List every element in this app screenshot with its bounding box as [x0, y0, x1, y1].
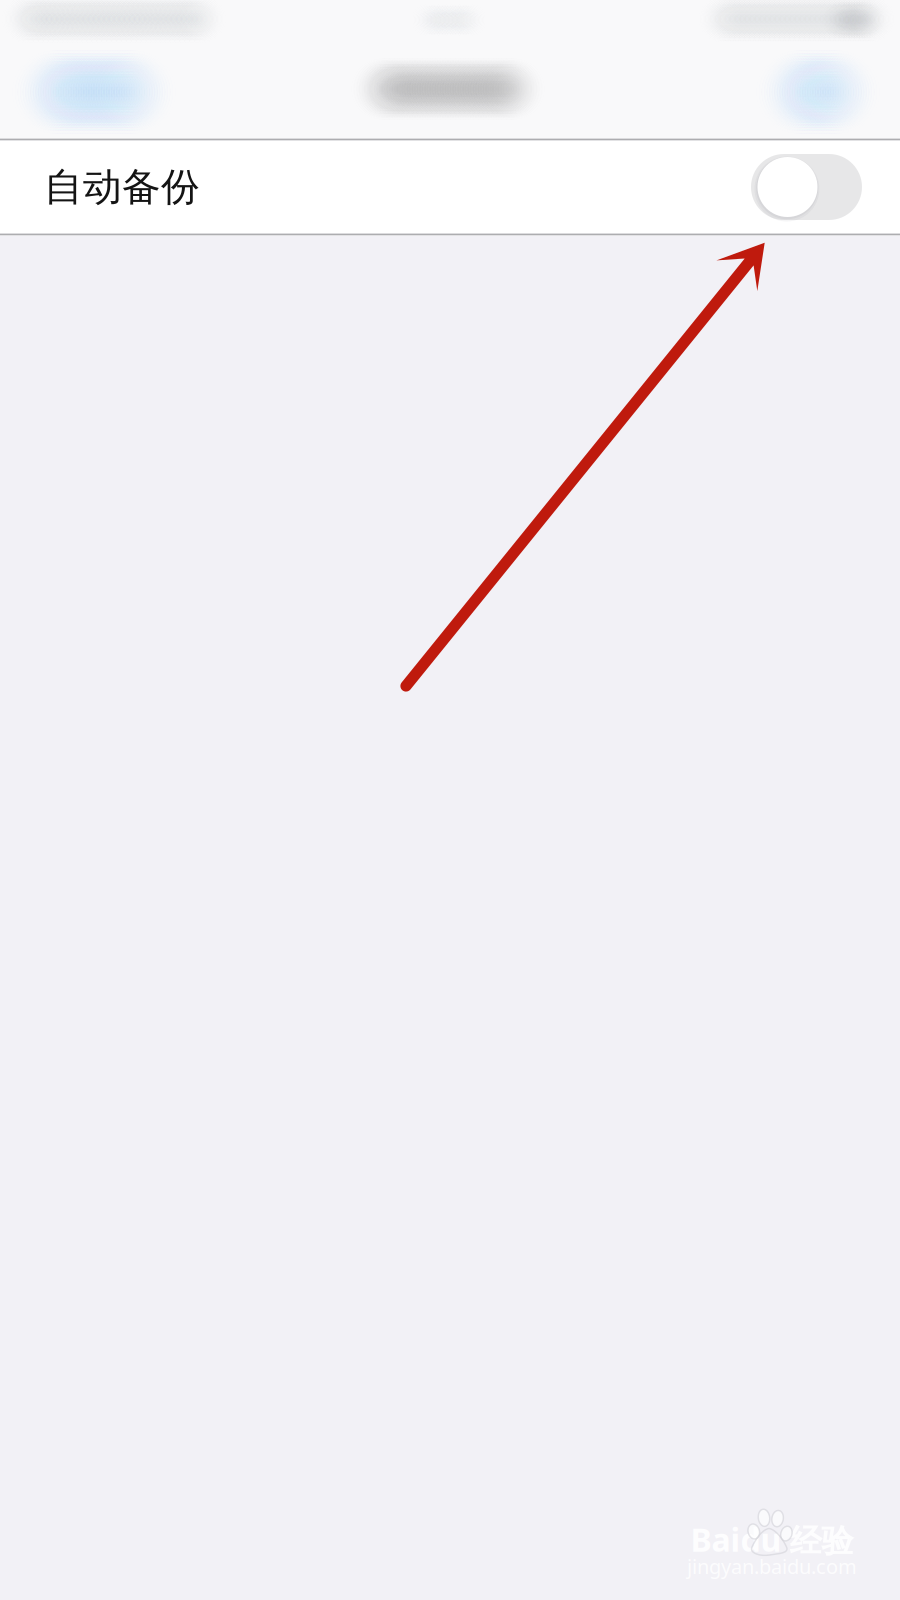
staticText: 自动备份	[44, 163, 200, 211]
staticText: jingyan.baidu.com	[687, 1553, 857, 1580]
button[interactable]: Done	[776, 46, 900, 139]
button[interactable]: 自动备份	[0, 141, 900, 233]
staticText: Baidu 经验	[690, 1518, 853, 1561]
button[interactable]: Back	[36, 46, 206, 139]
